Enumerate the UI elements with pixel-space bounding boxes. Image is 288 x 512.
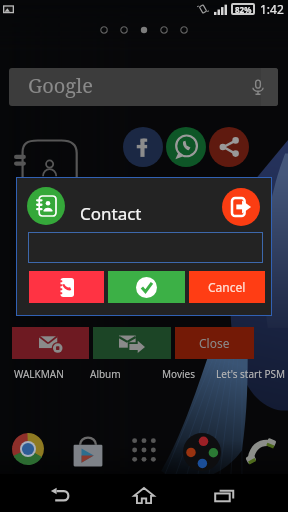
button[interactable]: Recents bbox=[210, 481, 238, 509]
staticText: Movies bbox=[162, 367, 196, 381]
button[interactable]: OK bbox=[108, 271, 185, 303]
button[interactable]: Back bbox=[46, 481, 74, 509]
staticText: Close bbox=[199, 335, 230, 351]
button[interactable]: Apps bbox=[129, 435, 159, 465]
button[interactable]: Folder bbox=[183, 433, 221, 471]
staticText: 1:42 bbox=[260, 1, 284, 17]
button[interactable]: Send message bbox=[93, 327, 171, 359]
button[interactable]: Chrome bbox=[11, 432, 45, 466]
staticText: Google bbox=[28, 72, 94, 99]
button[interactable]: Cancel bbox=[189, 271, 265, 303]
button[interactable]: Close bbox=[175, 327, 254, 359]
staticText: Cancel bbox=[208, 279, 246, 295]
button[interactable] bbox=[28, 232, 263, 263]
button[interactable]: Share bbox=[209, 127, 249, 167]
button[interactable]: Phone bbox=[243, 433, 277, 467]
staticText: Let's start PSM bbox=[216, 367, 285, 381]
staticText: WALKMAN bbox=[14, 367, 64, 381]
button[interactable]: Contacts bbox=[27, 187, 65, 225]
staticText: Album bbox=[90, 367, 121, 381]
button[interactable]: Google bbox=[9, 68, 278, 106]
staticText: 82% bbox=[235, 4, 252, 15]
button[interactable]: Facebook bbox=[123, 127, 163, 167]
button[interactable]: Exit bbox=[222, 188, 260, 226]
button[interactable]: Phonebook bbox=[29, 271, 104, 303]
button[interactable]: Delete message bbox=[12, 327, 89, 359]
button[interactable]: WhatsApp bbox=[166, 127, 206, 167]
button[interactable]: Home bbox=[130, 481, 158, 509]
button[interactable]: Play Store bbox=[70, 434, 106, 470]
staticText: Contact bbox=[80, 202, 142, 225]
